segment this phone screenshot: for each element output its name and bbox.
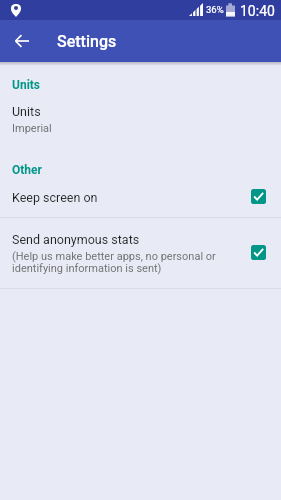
staticText: (Help us make better apps, no personal o… — [12, 250, 216, 275]
staticText: Units — [12, 104, 41, 119]
button[interactable]: Send anonymous stats — [0, 229, 281, 280]
button[interactable]: Units — [0, 100, 281, 139]
button[interactable]: Keep screen on — [0, 183, 281, 211]
staticText: Units — [12, 78, 41, 92]
staticText: Other — [12, 163, 42, 177]
staticText: Settings — [57, 32, 117, 51]
staticText: 10:40 — [240, 3, 275, 19]
staticText: Keep screen on — [12, 190, 251, 205]
staticText: Imperial — [12, 122, 52, 135]
staticText: Send anonymous stats — [12, 232, 140, 247]
staticText: 36% — [206, 4, 224, 15]
button[interactable]: Back — [1, 20, 43, 62]
